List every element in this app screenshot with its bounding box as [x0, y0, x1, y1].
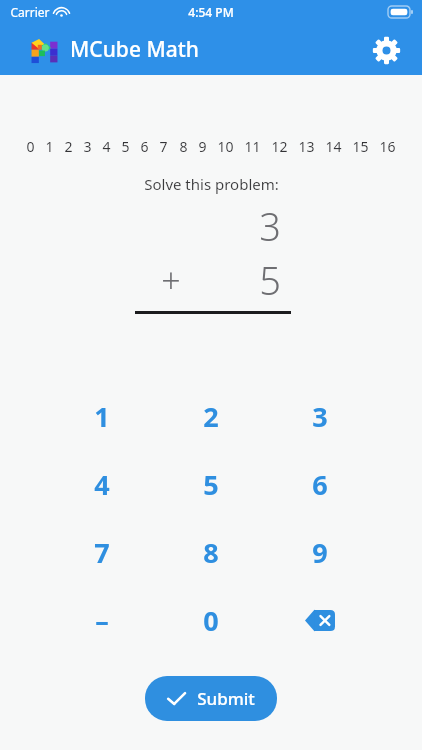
button[interactable]: 0 — [156, 586, 265, 654]
button[interactable]: 7 — [48, 518, 156, 586]
staticText: 2 — [64, 137, 73, 156]
staticText: 5 — [259, 254, 281, 306]
button[interactable]: Backspace — [265, 586, 374, 654]
staticText: 1 — [94, 398, 110, 435]
button[interactable]: 9 — [265, 518, 374, 586]
staticText: 4:54 PM — [188, 4, 234, 20]
button[interactable]: 1 — [48, 382, 156, 450]
button[interactable]: 3 — [265, 382, 374, 450]
staticText: 6 — [140, 137, 149, 156]
button[interactable]: 8 — [156, 518, 265, 586]
button[interactable]: Submit — [145, 676, 277, 721]
staticText: 3 — [312, 398, 328, 435]
staticText: 8 — [179, 137, 188, 156]
staticText: 1 — [45, 137, 54, 156]
staticText: Solve this problem: — [144, 174, 279, 194]
staticText: 11 — [244, 137, 261, 156]
staticText: Carrier — [10, 4, 50, 20]
staticText: – — [95, 602, 109, 639]
staticText: 4 — [94, 466, 110, 503]
button[interactable]: 6 — [265, 450, 374, 518]
staticText: 5 — [203, 466, 219, 503]
staticText: 14 — [325, 137, 342, 156]
staticText: MCube Math — [70, 35, 199, 64]
staticText: 9 — [312, 534, 328, 571]
staticText: 0 — [26, 137, 35, 156]
staticText: 4 — [102, 137, 111, 156]
staticText: 5 — [121, 137, 130, 156]
staticText: 10 — [217, 137, 234, 156]
staticText: 9 — [198, 137, 207, 156]
staticText: 2 — [203, 398, 219, 435]
staticText: 15 — [352, 137, 369, 156]
button[interactable]: 5 — [156, 450, 265, 518]
staticText: Submit — [197, 687, 255, 710]
staticText: 12 — [271, 137, 288, 156]
button[interactable]: 2 — [156, 382, 265, 450]
staticText: 3 — [259, 200, 281, 252]
button[interactable]: 4 — [48, 450, 156, 518]
staticText: 13 — [298, 137, 315, 156]
staticText: 7 — [94, 534, 110, 571]
staticText: 6 — [312, 466, 328, 503]
staticText: 3 — [83, 137, 92, 156]
staticText: + — [161, 257, 181, 303]
staticText: 0 — [203, 602, 219, 639]
staticText: 16 — [379, 137, 396, 156]
button[interactable]: – — [48, 586, 156, 654]
staticText: 8 — [203, 534, 219, 571]
button[interactable]: Settings — [364, 28, 408, 72]
staticText: 7 — [159, 137, 168, 156]
